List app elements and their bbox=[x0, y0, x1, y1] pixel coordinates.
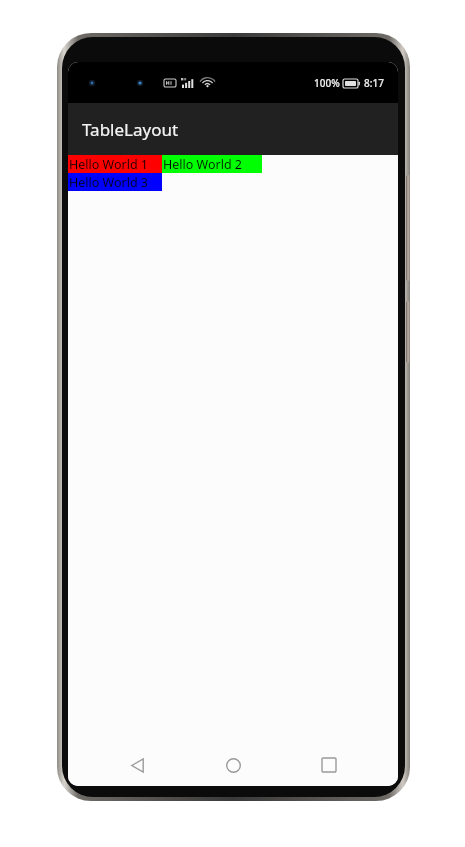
staticText: Hello World 3 bbox=[69, 174, 148, 191]
staticText: 100% bbox=[314, 76, 340, 90]
button[interactable]: Hello World 3 bbox=[68, 173, 162, 191]
staticText: Hello World 1 bbox=[69, 156, 148, 173]
staticText: TableLayout bbox=[82, 118, 179, 141]
button[interactable]: Hello World 1 bbox=[68, 155, 162, 173]
staticText: Hello World 2 bbox=[163, 156, 242, 173]
button[interactable]: Recent apps bbox=[302, 744, 356, 786]
staticText: 8:17 bbox=[364, 76, 384, 90]
button[interactable]: Hello World 2 bbox=[162, 155, 262, 173]
button[interactable]: Back bbox=[110, 744, 164, 786]
button[interactable]: TableLayout bbox=[68, 103, 398, 155]
button[interactable]: Home bbox=[206, 744, 260, 786]
